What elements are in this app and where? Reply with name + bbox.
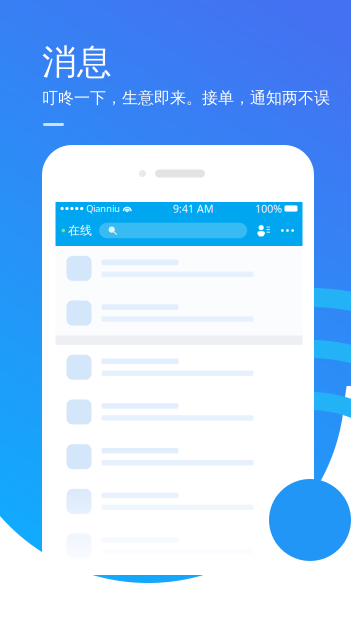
button[interactable]: Contacts xyxy=(251,215,275,246)
staticText: 消息 xyxy=(42,41,112,84)
staticText: 叮咚一下，生意即来。接单，通知两不误 xyxy=(42,88,330,108)
button[interactable] xyxy=(55,291,302,335)
button[interactable] xyxy=(55,524,302,568)
staticText: Qianniu xyxy=(86,202,120,215)
button[interactable] xyxy=(55,479,302,524)
button[interactable] xyxy=(55,434,302,479)
button[interactable] xyxy=(55,345,302,390)
button[interactable]: More xyxy=(275,215,299,246)
staticText: 9:41 AM xyxy=(173,201,214,216)
button[interactable] xyxy=(55,390,302,434)
button[interactable] xyxy=(55,246,302,291)
staticText: 在线 xyxy=(68,223,92,238)
button[interactable]: 在线 xyxy=(55,215,92,246)
staticText: 100% xyxy=(255,201,282,216)
button[interactable]: Search xyxy=(92,215,247,246)
